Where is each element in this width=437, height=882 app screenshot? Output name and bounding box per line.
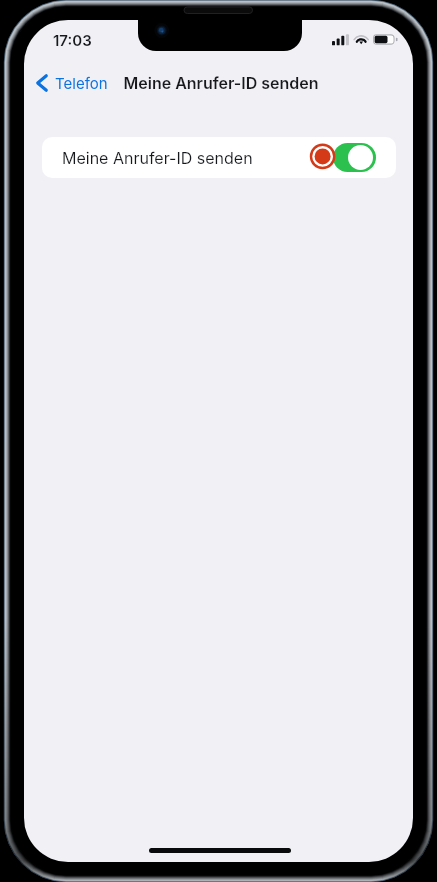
staticText: Meine Anrufer-ID senden [62,148,253,167]
staticText: Telefon [55,74,108,92]
button[interactable]: Meine Anrufer-ID senden [42,137,396,178]
staticText: 17:03 [53,31,92,49]
button[interactable]: Anrufer-ID senden einschalten [333,143,376,172]
button[interactable]: Telefon [28,68,118,98]
staticText: Meine Anrufer-ID senden [109,73,333,92]
